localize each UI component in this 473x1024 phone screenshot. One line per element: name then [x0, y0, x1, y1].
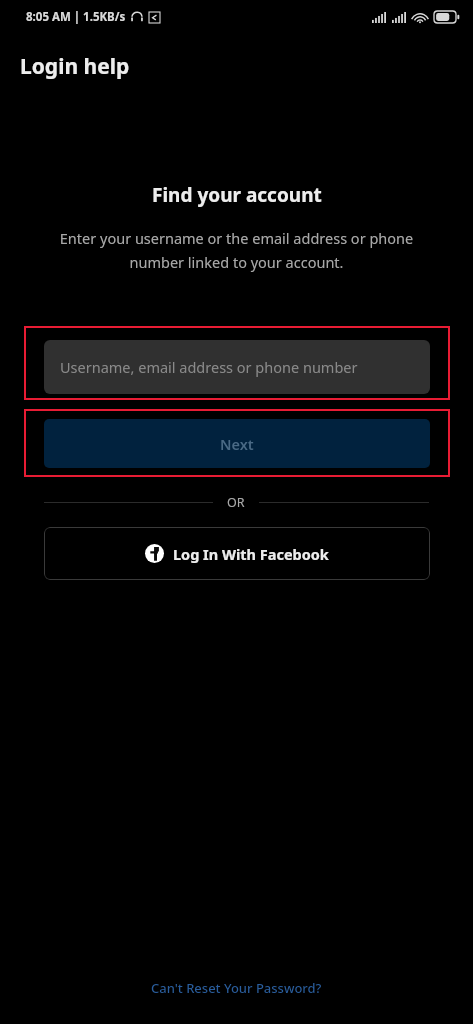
- staticText: Find your account: [152, 182, 322, 208]
- button[interactable]: Can't Reset Your Password?: [143, 977, 330, 999]
- button[interactable]: Username, email address or phone number: [44, 340, 430, 394]
- staticText: Can't Reset Your Password?: [151, 979, 322, 997]
- staticText: Login help: [20, 52, 130, 81]
- staticText: Log In With Facebook: [173, 544, 329, 564]
- staticText: OR: [227, 494, 245, 511]
- staticText: Enter your username or the email address…: [56, 228, 417, 272]
- staticText: Username, email address or phone number: [60, 357, 358, 377]
- staticText: 8:05 AM | 1.5KB/s: [26, 9, 126, 25]
- staticText: Next: [220, 434, 254, 454]
- button[interactable]: Log In With Facebook: [44, 527, 430, 580]
- button[interactable]: Next: [44, 419, 430, 468]
